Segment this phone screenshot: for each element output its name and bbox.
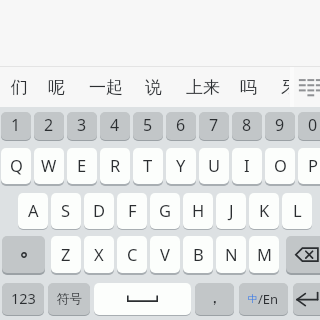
staticText: 符号 xyxy=(57,291,82,307)
staticText: A xyxy=(28,199,39,221)
button[interactable]: A xyxy=(18,193,48,229)
staticText: 吗 xyxy=(240,77,257,98)
staticText: U xyxy=(208,154,221,176)
staticText: W xyxy=(41,154,57,176)
button[interactable]: J xyxy=(216,193,246,229)
staticText: 们 xyxy=(11,77,28,98)
staticText: 说 xyxy=(145,77,162,98)
button[interactable]: 5 xyxy=(133,112,163,140)
button[interactable]: X xyxy=(84,236,114,273)
button[interactable]: Shift xyxy=(2,236,45,273)
button[interactable]: 牙 xyxy=(274,67,289,107)
staticText: Z xyxy=(61,243,71,265)
button[interactable]: Y xyxy=(166,148,196,184)
staticText: D xyxy=(93,199,106,221)
staticText: ， xyxy=(206,287,223,308)
button[interactable]: Enter xyxy=(293,283,320,315)
button[interactable]: K xyxy=(249,193,279,229)
staticText: L xyxy=(293,199,302,221)
staticText: 4 xyxy=(110,114,120,136)
staticText: F xyxy=(128,199,137,221)
button[interactable]: E xyxy=(67,148,97,184)
staticText: Y xyxy=(176,154,186,176)
button[interactable]: M xyxy=(249,236,279,273)
button[interactable]: Switch language xyxy=(239,283,288,315)
staticText: J xyxy=(229,199,234,221)
button[interactable]: 7 xyxy=(199,112,229,140)
button[interactable]: 2 xyxy=(34,112,64,140)
staticText: T xyxy=(143,154,153,176)
button[interactable]: 123 xyxy=(2,283,44,315)
button[interactable]: P xyxy=(298,148,320,184)
staticText: G xyxy=(159,199,172,221)
button[interactable]: 说 xyxy=(138,67,169,107)
staticText: 123 xyxy=(11,288,36,308)
button[interactable]: 上来 xyxy=(179,67,227,107)
button[interactable]: O xyxy=(265,148,295,184)
staticText: /En xyxy=(258,290,279,308)
button[interactable]: B xyxy=(183,236,213,273)
button[interactable]: 4 xyxy=(100,112,130,140)
button[interactable]: F xyxy=(117,193,147,229)
button[interactable]: N xyxy=(216,236,246,273)
staticText: M xyxy=(257,243,272,265)
staticText: 9 xyxy=(275,114,285,136)
staticText: 1 xyxy=(11,114,21,136)
button[interactable]: 1 xyxy=(1,112,31,140)
staticText: 2 xyxy=(44,114,54,136)
staticText: 一起 xyxy=(89,77,123,98)
button[interactable]: T xyxy=(133,148,163,184)
staticText: R xyxy=(110,154,121,176)
staticText: 7 xyxy=(209,114,219,136)
button[interactable]: 6 xyxy=(166,112,196,140)
staticText: O xyxy=(274,154,287,176)
staticText: X xyxy=(94,243,104,265)
staticText: 8 xyxy=(242,114,252,136)
button[interactable]: Show more candidates xyxy=(292,67,320,107)
staticText: V xyxy=(160,243,170,265)
button[interactable]: W xyxy=(34,148,64,184)
button[interactable]: Backspace xyxy=(286,236,320,273)
staticText: P xyxy=(308,154,318,176)
staticText: Q xyxy=(10,154,23,176)
button[interactable]: D xyxy=(84,193,114,229)
staticText: N xyxy=(225,243,238,265)
button[interactable]: Comma xyxy=(195,283,234,315)
button[interactable]: I xyxy=(232,148,262,184)
staticText: 5 xyxy=(143,114,153,136)
button[interactable]: 9 xyxy=(265,112,295,140)
button[interactable]: 呢 xyxy=(41,67,72,107)
button[interactable]: 们 xyxy=(4,67,35,107)
button[interactable]: V xyxy=(150,236,180,273)
button[interactable]: Q xyxy=(1,148,31,184)
staticText: E xyxy=(77,154,87,176)
button[interactable]: 吗 xyxy=(233,67,264,107)
button[interactable]: U xyxy=(199,148,229,184)
staticText: 中 xyxy=(248,293,258,305)
staticText: 0 xyxy=(308,114,318,136)
button[interactable]: H xyxy=(183,193,213,229)
staticText: 上来 xyxy=(186,77,220,98)
button[interactable]: R xyxy=(100,148,130,184)
button[interactable]: 一起 xyxy=(82,67,130,107)
staticText: 3 xyxy=(77,114,87,136)
button[interactable]: 3 xyxy=(67,112,97,140)
staticText: 呢 xyxy=(48,77,65,98)
button[interactable]: 0 xyxy=(298,112,320,140)
button[interactable]: Space xyxy=(94,283,191,315)
button[interactable]: Z xyxy=(51,236,81,273)
button[interactable]: C xyxy=(117,236,147,273)
button[interactable]: 符号 xyxy=(48,283,90,315)
staticText: 牙 xyxy=(281,77,289,98)
staticText: S xyxy=(61,199,71,221)
button[interactable]: S xyxy=(51,193,81,229)
button[interactable]: 8 xyxy=(232,112,262,140)
staticText: H xyxy=(192,199,205,221)
staticText: C xyxy=(127,243,138,265)
staticText: K xyxy=(259,199,270,221)
staticText: B xyxy=(193,243,204,265)
staticText: 6 xyxy=(176,114,186,136)
staticText: I xyxy=(244,154,250,176)
button[interactable]: L xyxy=(282,193,312,229)
button[interactable]: G xyxy=(150,193,180,229)
